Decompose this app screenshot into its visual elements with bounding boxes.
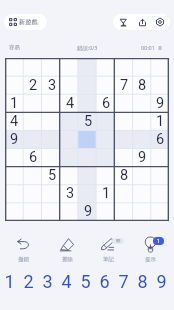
button[interactable]: 8 bbox=[135, 271, 150, 291]
button[interactable] bbox=[43, 185, 61, 203]
button[interactable]: 4 bbox=[61, 95, 79, 113]
button[interactable] bbox=[24, 203, 43, 221]
button[interactable] bbox=[79, 149, 97, 167]
button[interactable]: 1 bbox=[5, 95, 24, 113]
button[interactable] bbox=[151, 149, 169, 167]
button[interactable]: 5 bbox=[43, 167, 61, 185]
button[interactable] bbox=[61, 167, 79, 185]
button[interactable]: 6 bbox=[97, 271, 112, 291]
button[interactable]: 1 bbox=[2, 271, 17, 291]
button[interactable] bbox=[115, 203, 133, 221]
button[interactable]: 5 bbox=[78, 271, 93, 291]
button[interactable] bbox=[115, 185, 133, 203]
button[interactable] bbox=[151, 203, 169, 221]
button[interactable] bbox=[115, 58, 133, 77]
button[interactable] bbox=[24, 58, 43, 77]
button[interactable] bbox=[43, 95, 61, 113]
button[interactable] bbox=[24, 185, 43, 203]
button[interactable] bbox=[97, 77, 115, 95]
button[interactable] bbox=[97, 149, 115, 167]
button[interactable] bbox=[97, 167, 115, 185]
button[interactable] bbox=[79, 167, 97, 185]
button[interactable] bbox=[151, 77, 169, 95]
button[interactable]: 9 bbox=[151, 95, 169, 113]
button[interactable] bbox=[115, 149, 133, 167]
button[interactable] bbox=[43, 58, 61, 77]
button[interactable] bbox=[43, 113, 61, 131]
button[interactable]: 4 bbox=[5, 113, 24, 131]
button[interactable]: 9 bbox=[79, 203, 97, 221]
button[interactable]: 6 bbox=[151, 131, 169, 149]
button[interactable] bbox=[61, 77, 79, 95]
button[interactable] bbox=[24, 167, 43, 185]
button[interactable] bbox=[151, 185, 169, 203]
button[interactable]: 4 bbox=[59, 271, 74, 291]
button[interactable] bbox=[24, 113, 43, 131]
button[interactable]: 3 bbox=[40, 271, 55, 291]
button[interactable] bbox=[115, 113, 133, 131]
button[interactable] bbox=[151, 58, 169, 77]
button[interactable]: 1 bbox=[97, 185, 115, 203]
button[interactable] bbox=[97, 58, 115, 77]
button[interactable] bbox=[43, 203, 61, 221]
button[interactable] bbox=[5, 203, 24, 221]
button[interactable] bbox=[133, 113, 151, 131]
button[interactable] bbox=[5, 58, 24, 77]
button[interactable] bbox=[133, 167, 151, 185]
button[interactable]: Statistics bbox=[115, 14, 131, 30]
button[interactable] bbox=[133, 58, 151, 77]
button[interactable] bbox=[61, 131, 79, 149]
button[interactable]: 8 bbox=[115, 167, 133, 185]
button[interactable] bbox=[61, 149, 79, 167]
button[interactable] bbox=[79, 131, 97, 149]
button[interactable] bbox=[133, 185, 151, 203]
button[interactable]: 8 bbox=[133, 77, 151, 95]
button[interactable]: 2 bbox=[24, 77, 43, 95]
button[interactable]: 擦除 bbox=[50, 236, 84, 263]
button[interactable] bbox=[79, 95, 97, 113]
button[interactable]: 撤銷 bbox=[6, 236, 40, 263]
button[interactable] bbox=[115, 95, 133, 113]
button[interactable]: 2 bbox=[21, 271, 36, 291]
button[interactable] bbox=[5, 77, 24, 95]
button[interactable]: 提示 bbox=[133, 236, 167, 263]
button[interactable]: Share bbox=[134, 14, 150, 30]
button[interactable]: Settings bbox=[152, 14, 168, 30]
staticText: 6 bbox=[102, 95, 111, 112]
button[interactable] bbox=[24, 95, 43, 113]
button[interactable] bbox=[5, 185, 24, 203]
button[interactable] bbox=[61, 203, 79, 221]
button[interactable]: 新遊戲 bbox=[4, 14, 47, 30]
button[interactable] bbox=[151, 167, 169, 185]
button[interactable]: Pause bbox=[157, 45, 163, 51]
button[interactable] bbox=[97, 131, 115, 149]
button[interactable]: 7 bbox=[115, 77, 133, 95]
button[interactable] bbox=[97, 113, 115, 131]
button[interactable] bbox=[43, 149, 61, 167]
button[interactable] bbox=[43, 131, 61, 149]
button[interactable]: 筆記 bbox=[91, 236, 125, 263]
button[interactable] bbox=[5, 167, 24, 185]
button[interactable]: 6 bbox=[24, 149, 43, 167]
button[interactable]: 5 bbox=[79, 113, 97, 131]
button[interactable] bbox=[79, 58, 97, 77]
button[interactable]: 7 bbox=[116, 271, 131, 291]
button[interactable] bbox=[133, 95, 151, 113]
button[interactable] bbox=[61, 58, 79, 77]
button[interactable]: 9 bbox=[5, 131, 24, 149]
button[interactable] bbox=[5, 149, 24, 167]
button[interactable]: 3 bbox=[43, 77, 61, 95]
button[interactable] bbox=[133, 203, 151, 221]
button[interactable]: 6 bbox=[97, 95, 115, 113]
button[interactable]: 1 bbox=[151, 113, 169, 131]
button[interactable]: 9 bbox=[154, 271, 169, 291]
button[interactable]: 3 bbox=[61, 185, 79, 203]
button[interactable] bbox=[97, 203, 115, 221]
button[interactable]: 9 bbox=[133, 149, 151, 167]
